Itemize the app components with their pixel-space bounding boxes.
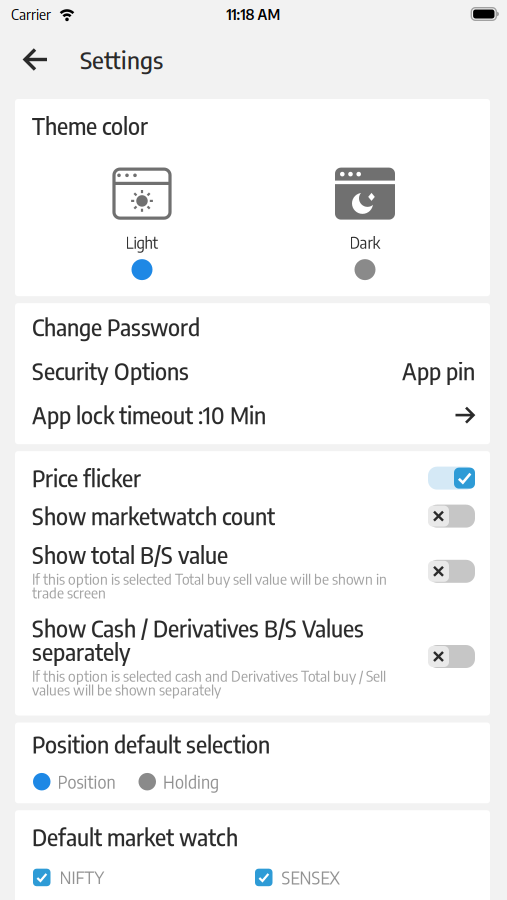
staticText: Default market watch: [32, 823, 238, 851]
button[interactable]: On: [428, 466, 475, 490]
staticText: Change Password: [32, 313, 200, 341]
button[interactable]: Back: [0, 47, 48, 72]
staticText: Show total B/S value: [32, 541, 228, 569]
staticText: Carrier: [11, 5, 51, 23]
button[interactable]: Position: [33, 771, 115, 792]
staticText: Holding: [163, 771, 219, 792]
staticText: Show marketwatch count: [32, 502, 275, 530]
staticText: SENSEX: [281, 867, 339, 888]
staticText: Price flicker: [32, 464, 141, 492]
button[interactable]: Dark theme: [305, 168, 425, 280]
button[interactable]: Change Password: [15, 305, 490, 349]
staticText: Light: [125, 233, 158, 252]
staticText: Security Options: [32, 357, 189, 385]
button[interactable]: Off: [428, 504, 475, 528]
staticText: Show Cash / Derivatives B/S Values separ…: [32, 614, 364, 666]
staticText: If this option is selected cash and Deri…: [32, 667, 386, 699]
staticText: App lock timeout :10 Min: [32, 401, 266, 429]
staticText: Settings: [80, 45, 163, 74]
button[interactable]: App lock timeout :10 Min: [15, 393, 490, 437]
staticText: App pin: [402, 357, 475, 385]
button[interactable]: Off: [428, 644, 475, 668]
staticText: NIFTY: [59, 867, 104, 888]
button[interactable]: SENSEX: [255, 867, 339, 888]
button[interactable]: Off: [428, 559, 475, 583]
button[interactable]: Light theme: [82, 168, 202, 280]
staticText: If this option is selected Total buy sel…: [32, 570, 387, 602]
staticText: Theme color: [32, 112, 148, 140]
button[interactable]: NIFTY: [33, 867, 104, 888]
staticText: Position default selection: [32, 730, 270, 758]
button[interactable]: Security Options: [15, 349, 490, 393]
button[interactable]: Holding: [138, 771, 219, 792]
staticText: Dark: [349, 233, 380, 252]
staticText: 11:18 AM: [226, 5, 280, 23]
staticText: Position: [57, 771, 115, 792]
